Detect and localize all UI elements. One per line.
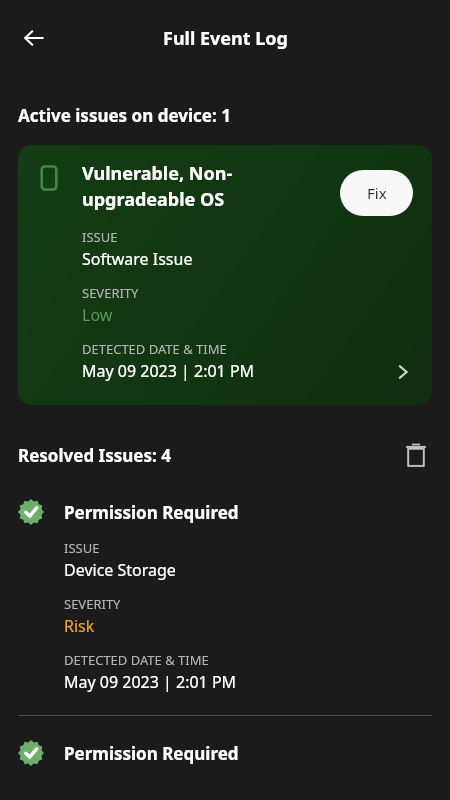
staticText: Resolved Issues: 4 [18,444,171,467]
staticText: May 09 2023 | 2:01 PM [64,671,237,693]
staticText: Full Event Log [163,26,288,51]
staticText: ISSUE [64,539,100,557]
staticText: DETECTED DATE & TIME [82,340,227,358]
button[interactable]: Fix [340,170,413,216]
staticText: Vulnerable, Non-upgradeable OS [82,161,332,212]
button[interactable]: Permission Required [0,740,450,766]
staticText: Active issues on device: 1 [18,104,231,127]
staticText: Low [82,304,113,326]
staticText: Permission Required [64,501,239,524]
staticText: May 09 2023 | 2:01 PM [82,360,255,382]
staticText: SEVERITY [82,284,139,302]
staticText: ISSUE [82,228,118,246]
other: Details [388,357,418,387]
staticText: Risk [64,615,95,637]
staticText: Software Issue [82,248,193,270]
button[interactable]: Vulnerable, Non-upgradeable OS [18,145,432,405]
button[interactable]: Back [10,14,58,62]
staticText: Permission Required [64,742,239,765]
button[interactable]: Delete all resolved issues [394,433,438,477]
staticText: Fix [367,183,387,203]
staticText: Device Storage [64,559,176,581]
staticText: DETECTED DATE & TIME [64,651,209,669]
button[interactable]: Permission Required [0,499,450,715]
staticText: SEVERITY [64,595,121,613]
